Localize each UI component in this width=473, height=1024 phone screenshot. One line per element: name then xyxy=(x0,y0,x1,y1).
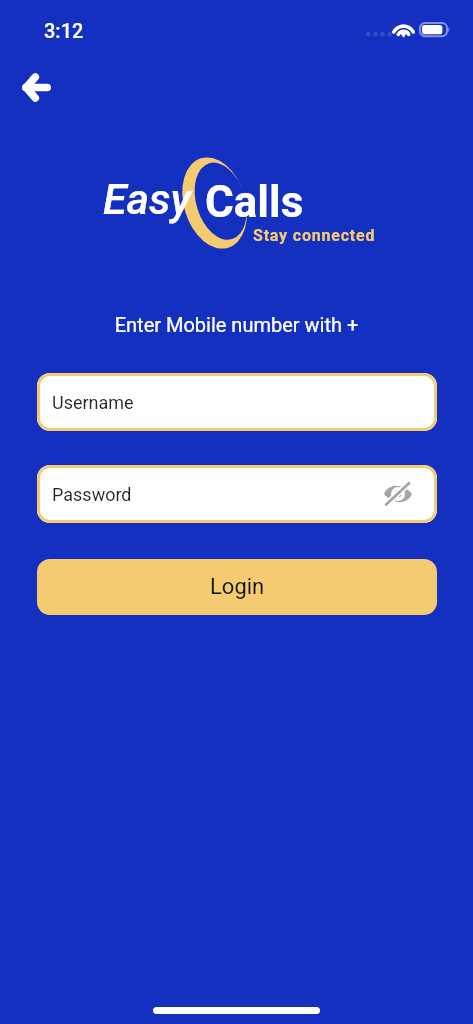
staticText: Login xyxy=(210,574,265,600)
button[interactable]: Show password xyxy=(378,474,418,514)
staticText: Username xyxy=(52,392,134,413)
staticText: Enter Mobile number with + xyxy=(0,313,473,336)
button[interactable]: Username xyxy=(37,373,437,431)
button[interactable]: Back xyxy=(13,64,59,110)
button[interactable]: Password xyxy=(37,465,437,523)
button[interactable]: Login xyxy=(37,559,437,615)
staticText: Easy xyxy=(103,174,191,224)
staticText: 3:12 xyxy=(44,19,84,42)
staticText: Stay connected xyxy=(253,226,376,245)
staticText: Password xyxy=(52,484,132,505)
staticText: Calls xyxy=(205,176,304,228)
